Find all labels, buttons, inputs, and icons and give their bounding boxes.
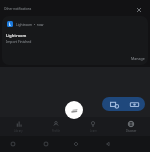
staticText: Other notifications <box>4 7 32 11</box>
staticText: Import Finished <box>6 39 32 44</box>
button[interactable]: Home <box>41 139 51 149</box>
button[interactable]: Shutter <box>65 101 83 119</box>
button[interactable]: Lightroom • now <box>2 16 148 65</box>
staticText: Lightroom • now <box>16 22 44 26</box>
button[interactable]: Assistant <box>8 139 18 149</box>
staticText: Discover <box>126 129 137 133</box>
button[interactable]: Close <box>134 5 144 15</box>
button[interactable]: Recents <box>71 139 81 149</box>
button[interactable]: Back <box>103 139 113 149</box>
button[interactable]: Library <box>0 121 37 133</box>
button[interactable]: Learn <box>74 121 112 133</box>
staticText: Learn <box>90 129 97 133</box>
staticText: Library <box>14 129 23 133</box>
staticText: Profile <box>52 129 60 133</box>
button[interactable]: Manage <box>128 55 148 62</box>
staticText: Manage <box>131 56 145 61</box>
button[interactable]: Camera <box>128 98 141 111</box>
button[interactable]: Screen record <box>108 98 121 111</box>
button[interactable]: Discover <box>112 121 150 133</box>
staticText: Lightroom <box>6 33 27 38</box>
button[interactable]: Profile <box>37 121 74 133</box>
